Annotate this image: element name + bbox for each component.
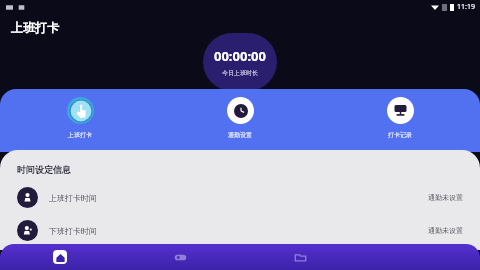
staticText: 11:19 xyxy=(457,2,475,12)
button[interactable]: 下班打卡时间 xyxy=(17,220,463,241)
staticText: 上班打卡 xyxy=(11,20,59,35)
button[interactable]: 上班打卡时间 xyxy=(17,187,463,208)
staticText: 通勤未设置 xyxy=(428,226,463,235)
staticText: 00:00:00 xyxy=(214,47,266,65)
staticText: 通勤未设置 xyxy=(428,193,463,202)
staticText: 时间设定信息 xyxy=(17,164,71,175)
staticText: 上班打卡 xyxy=(68,131,92,139)
staticText: 打卡记录 xyxy=(388,131,412,139)
button[interactable]: 00:00:00 xyxy=(203,33,277,91)
button[interactable]: Messages xyxy=(120,244,240,270)
staticText: 通勤设置 xyxy=(228,131,252,139)
button[interactable]: Records xyxy=(240,244,360,270)
button[interactable]: Home xyxy=(0,244,120,270)
staticText: 上班打卡时间 xyxy=(49,193,97,203)
staticText: 下班打卡时间 xyxy=(49,226,97,236)
button[interactable]: 上班打卡 xyxy=(0,97,160,139)
button[interactable]: 打卡记录 xyxy=(320,97,480,139)
button[interactable]: 通勤设置 xyxy=(160,97,320,139)
staticText: 今日上班时长 xyxy=(222,69,258,77)
